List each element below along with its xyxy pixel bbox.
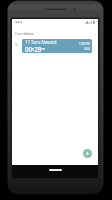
button[interactable]: 17 Sura Newest xyxy=(22,39,92,53)
staticText: 00ʸ28ᵐ xyxy=(25,45,46,53)
button[interactable]: Add countdown xyxy=(83,149,92,158)
staticText: 9:24 xyxy=(84,47,90,51)
staticText: 1:05 PM xyxy=(79,42,90,46)
staticText: Countdown xyxy=(15,31,35,36)
staticText: 17 Sura Newest xyxy=(25,39,57,45)
